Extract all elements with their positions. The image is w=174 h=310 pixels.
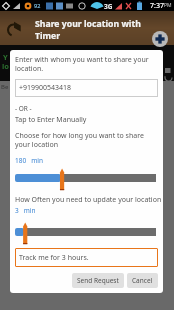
button[interactable]: Slider bbox=[15, 218, 156, 246]
staticText: Send Request bbox=[77, 276, 119, 285]
staticText: 92 bbox=[34, 2, 41, 9]
button[interactable]: Track me for 3 hours. bbox=[15, 248, 158, 267]
staticText: 3G bbox=[104, 2, 113, 11]
button[interactable]: Send Request bbox=[72, 273, 124, 288]
staticText: 3 min bbox=[15, 206, 36, 215]
button[interactable]: Cancel bbox=[127, 273, 158, 288]
staticText: Track me for 3 hours. bbox=[19, 253, 89, 263]
staticText: 7:37 bbox=[150, 1, 164, 11]
button[interactable]: Tap to Enter Manually bbox=[15, 115, 87, 125]
button[interactable]: +919900543418 bbox=[15, 79, 158, 97]
staticText: How Often you need to update your locati… bbox=[15, 195, 162, 205]
staticText: +919900543418 bbox=[19, 83, 72, 93]
button[interactable]: Add contact bbox=[152, 31, 168, 47]
staticText: - OR - bbox=[15, 104, 32, 113]
staticText: Share your location with Timer bbox=[35, 18, 143, 41]
staticText: Be bbox=[1, 83, 9, 91]
button[interactable]: Slider bbox=[15, 164, 156, 192]
staticText: 180 min bbox=[15, 156, 43, 165]
staticText: Enter with whom you want to share your l… bbox=[15, 55, 155, 73]
button[interactable]: Back bbox=[5, 20, 23, 38]
staticText: Choose for how long you want to share yo… bbox=[15, 131, 158, 149]
staticText: Y bbox=[3, 52, 8, 62]
staticText: PM bbox=[164, 2, 172, 9]
staticText: lo bbox=[2, 61, 9, 71]
staticText: Cancel bbox=[132, 276, 153, 285]
